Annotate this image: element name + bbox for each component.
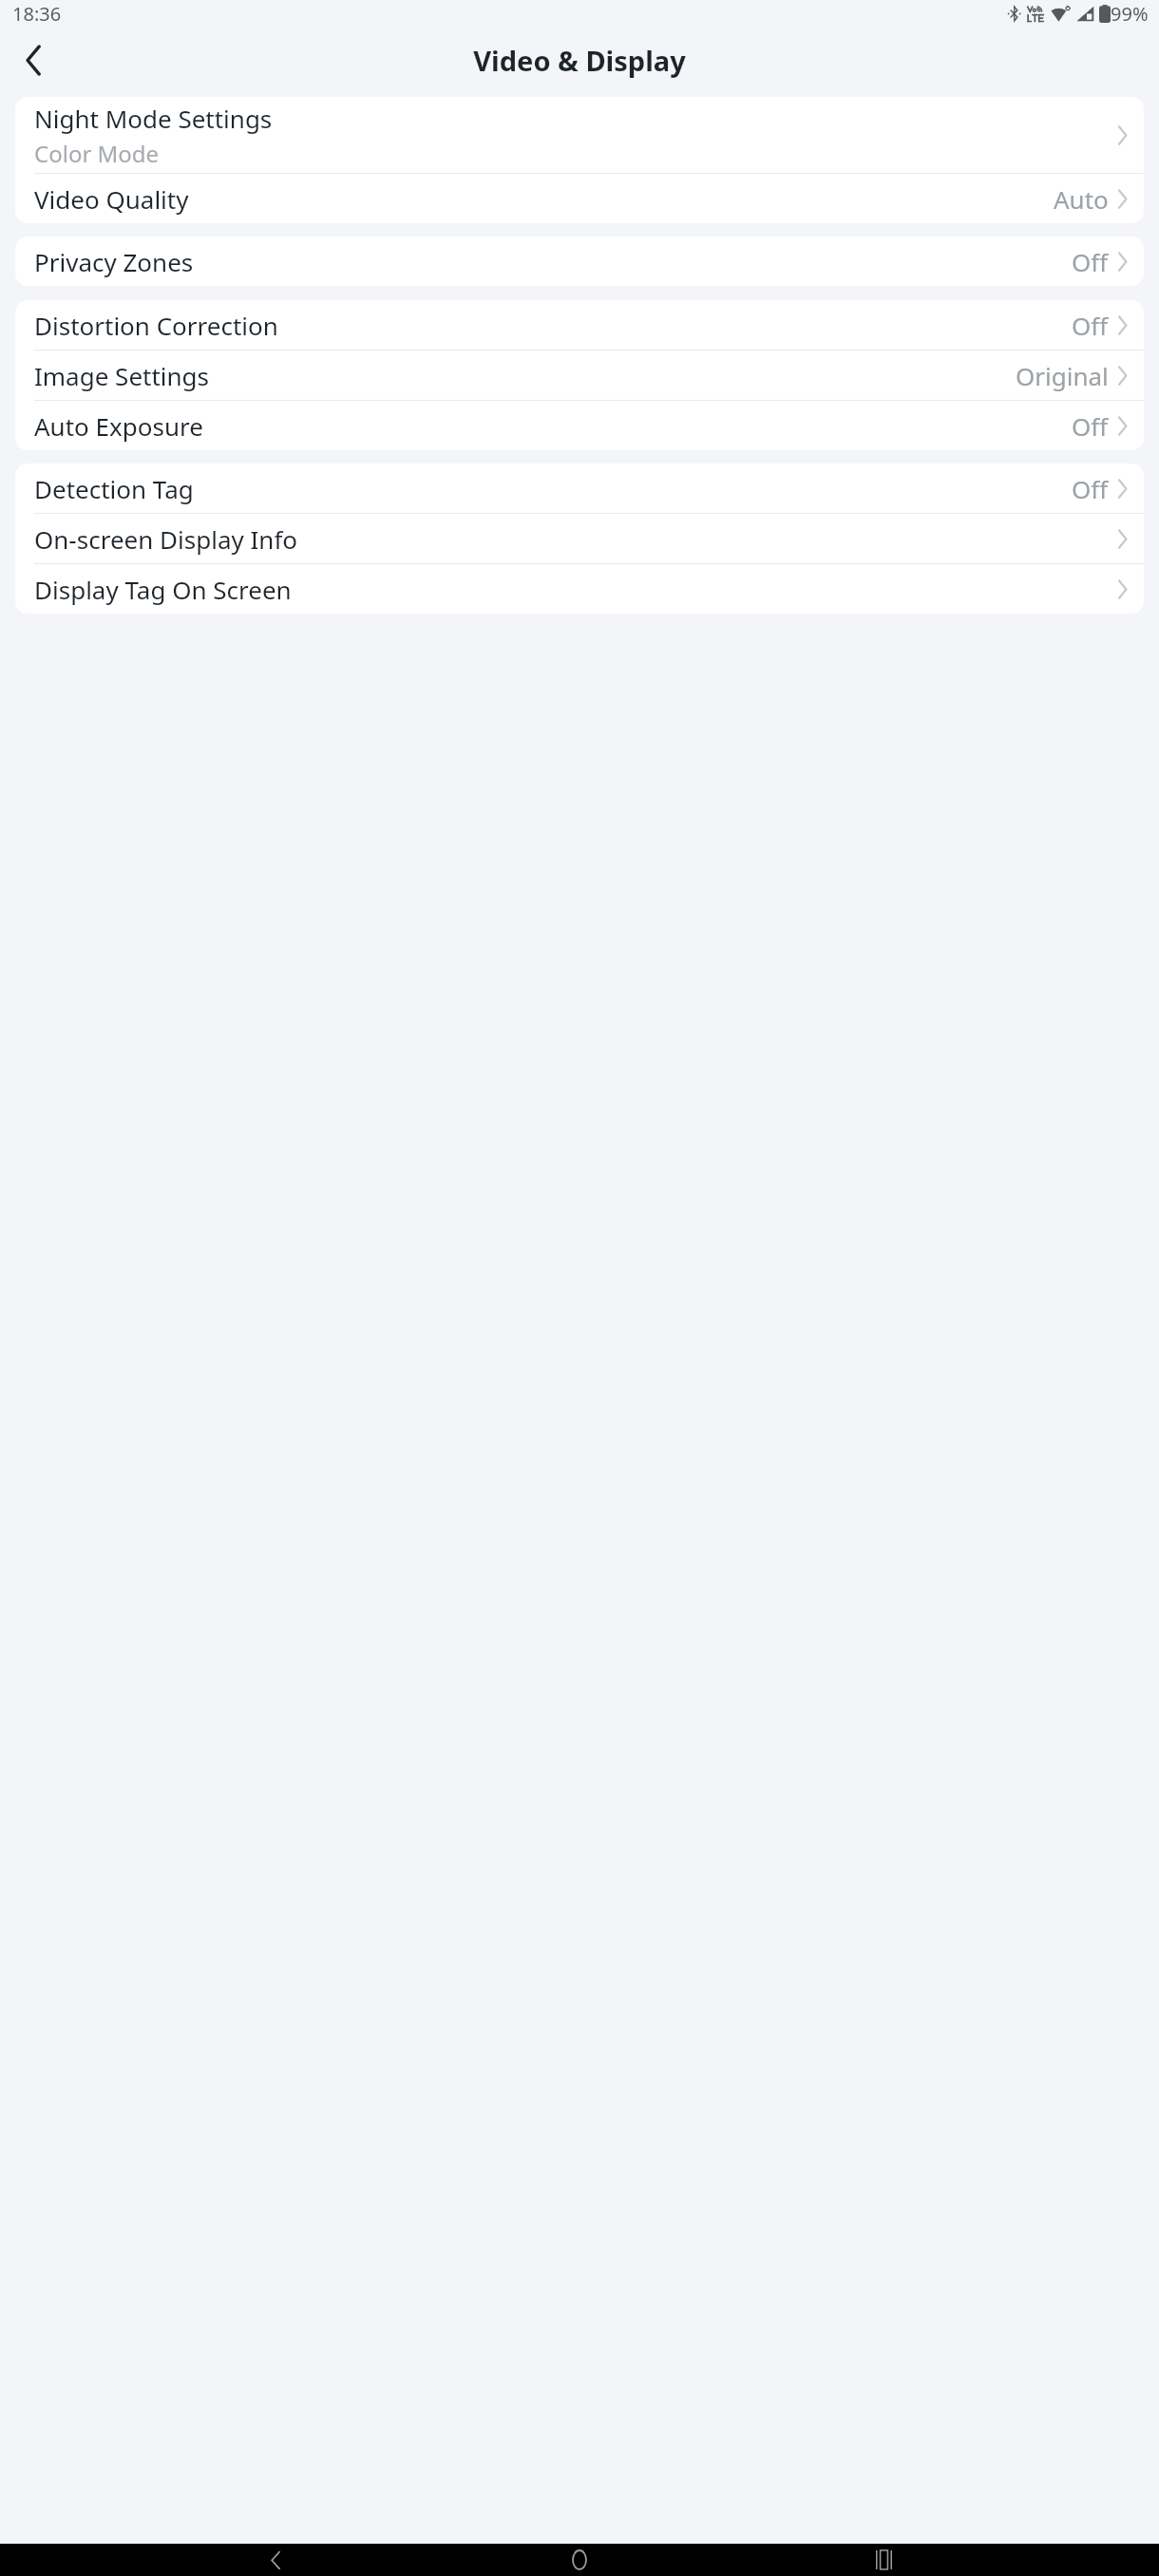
staticText: Off [1072,409,1109,443]
button[interactable]: On-screen Display Info [15,514,1144,563]
staticText: Off [1072,472,1109,505]
staticText: Image Settings [34,359,210,392]
button[interactable]: Video Quality [15,174,1144,223]
staticText: Auto Exposure [34,409,203,443]
staticText: Video & Display [473,42,686,79]
button[interactable]: Detection Tag [15,464,1144,513]
staticText: Video Quality [34,182,189,216]
button[interactable]: Night Mode Settings [15,97,1144,173]
button[interactable]: Home [551,2544,608,2576]
button[interactable]: Distortion Correction [15,300,1144,350]
button[interactable]: Display Tag On Screen [15,564,1144,614]
staticText: Off [1072,245,1109,278]
staticText: 99% [1111,1,1149,27]
button[interactable]: Auto Exposure [15,401,1144,450]
staticText: Display Tag On Screen [34,573,292,606]
staticText: Color Mode [34,138,160,169]
button[interactable]: Privacy Zones [15,237,1144,286]
staticText: Distortion Correction [34,309,278,342]
staticText: Night Mode Settings [34,102,273,135]
staticText: Detection Tag [34,472,194,505]
staticText: Off [1072,309,1109,342]
button[interactable]: Image Settings [15,350,1144,400]
button[interactable]: Back [247,2544,304,2576]
button[interactable]: Recent apps [855,2544,912,2576]
staticText: On-screen Display Info [34,522,298,556]
staticText: Privacy Zones [34,245,194,278]
staticText: 18:36 [12,1,62,27]
staticText: Auto [1054,182,1109,216]
staticText: Original [1016,359,1109,392]
button[interactable]: Back [8,34,59,85]
